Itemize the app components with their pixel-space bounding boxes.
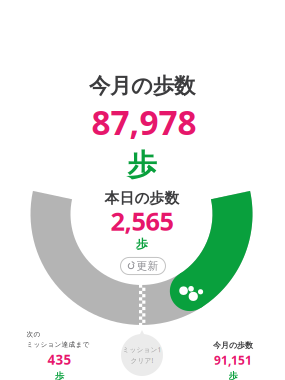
staticText: 歩 <box>55 370 64 380</box>
staticText: 歩 <box>228 370 237 380</box>
staticText: 次の <box>26 330 40 338</box>
staticText: 今月の歩数 <box>89 73 195 99</box>
staticText: 435 <box>47 351 71 368</box>
staticText: 本日の歩数 <box>104 189 179 207</box>
staticText: ミッション1 <box>122 345 161 354</box>
staticText: クリア! <box>130 356 153 365</box>
staticText: 91,151 <box>214 352 252 368</box>
staticText: 2,565 <box>110 204 173 238</box>
staticText: 歩 <box>136 237 148 251</box>
button[interactable]: 更新 <box>120 257 165 274</box>
staticText: 歩 <box>127 147 156 183</box>
staticText: ミッション達成まで <box>26 340 89 349</box>
staticText: 今月の歩数 <box>213 340 253 350</box>
staticText: 更新 <box>136 259 158 272</box>
staticText: 87,978 <box>91 100 196 144</box>
